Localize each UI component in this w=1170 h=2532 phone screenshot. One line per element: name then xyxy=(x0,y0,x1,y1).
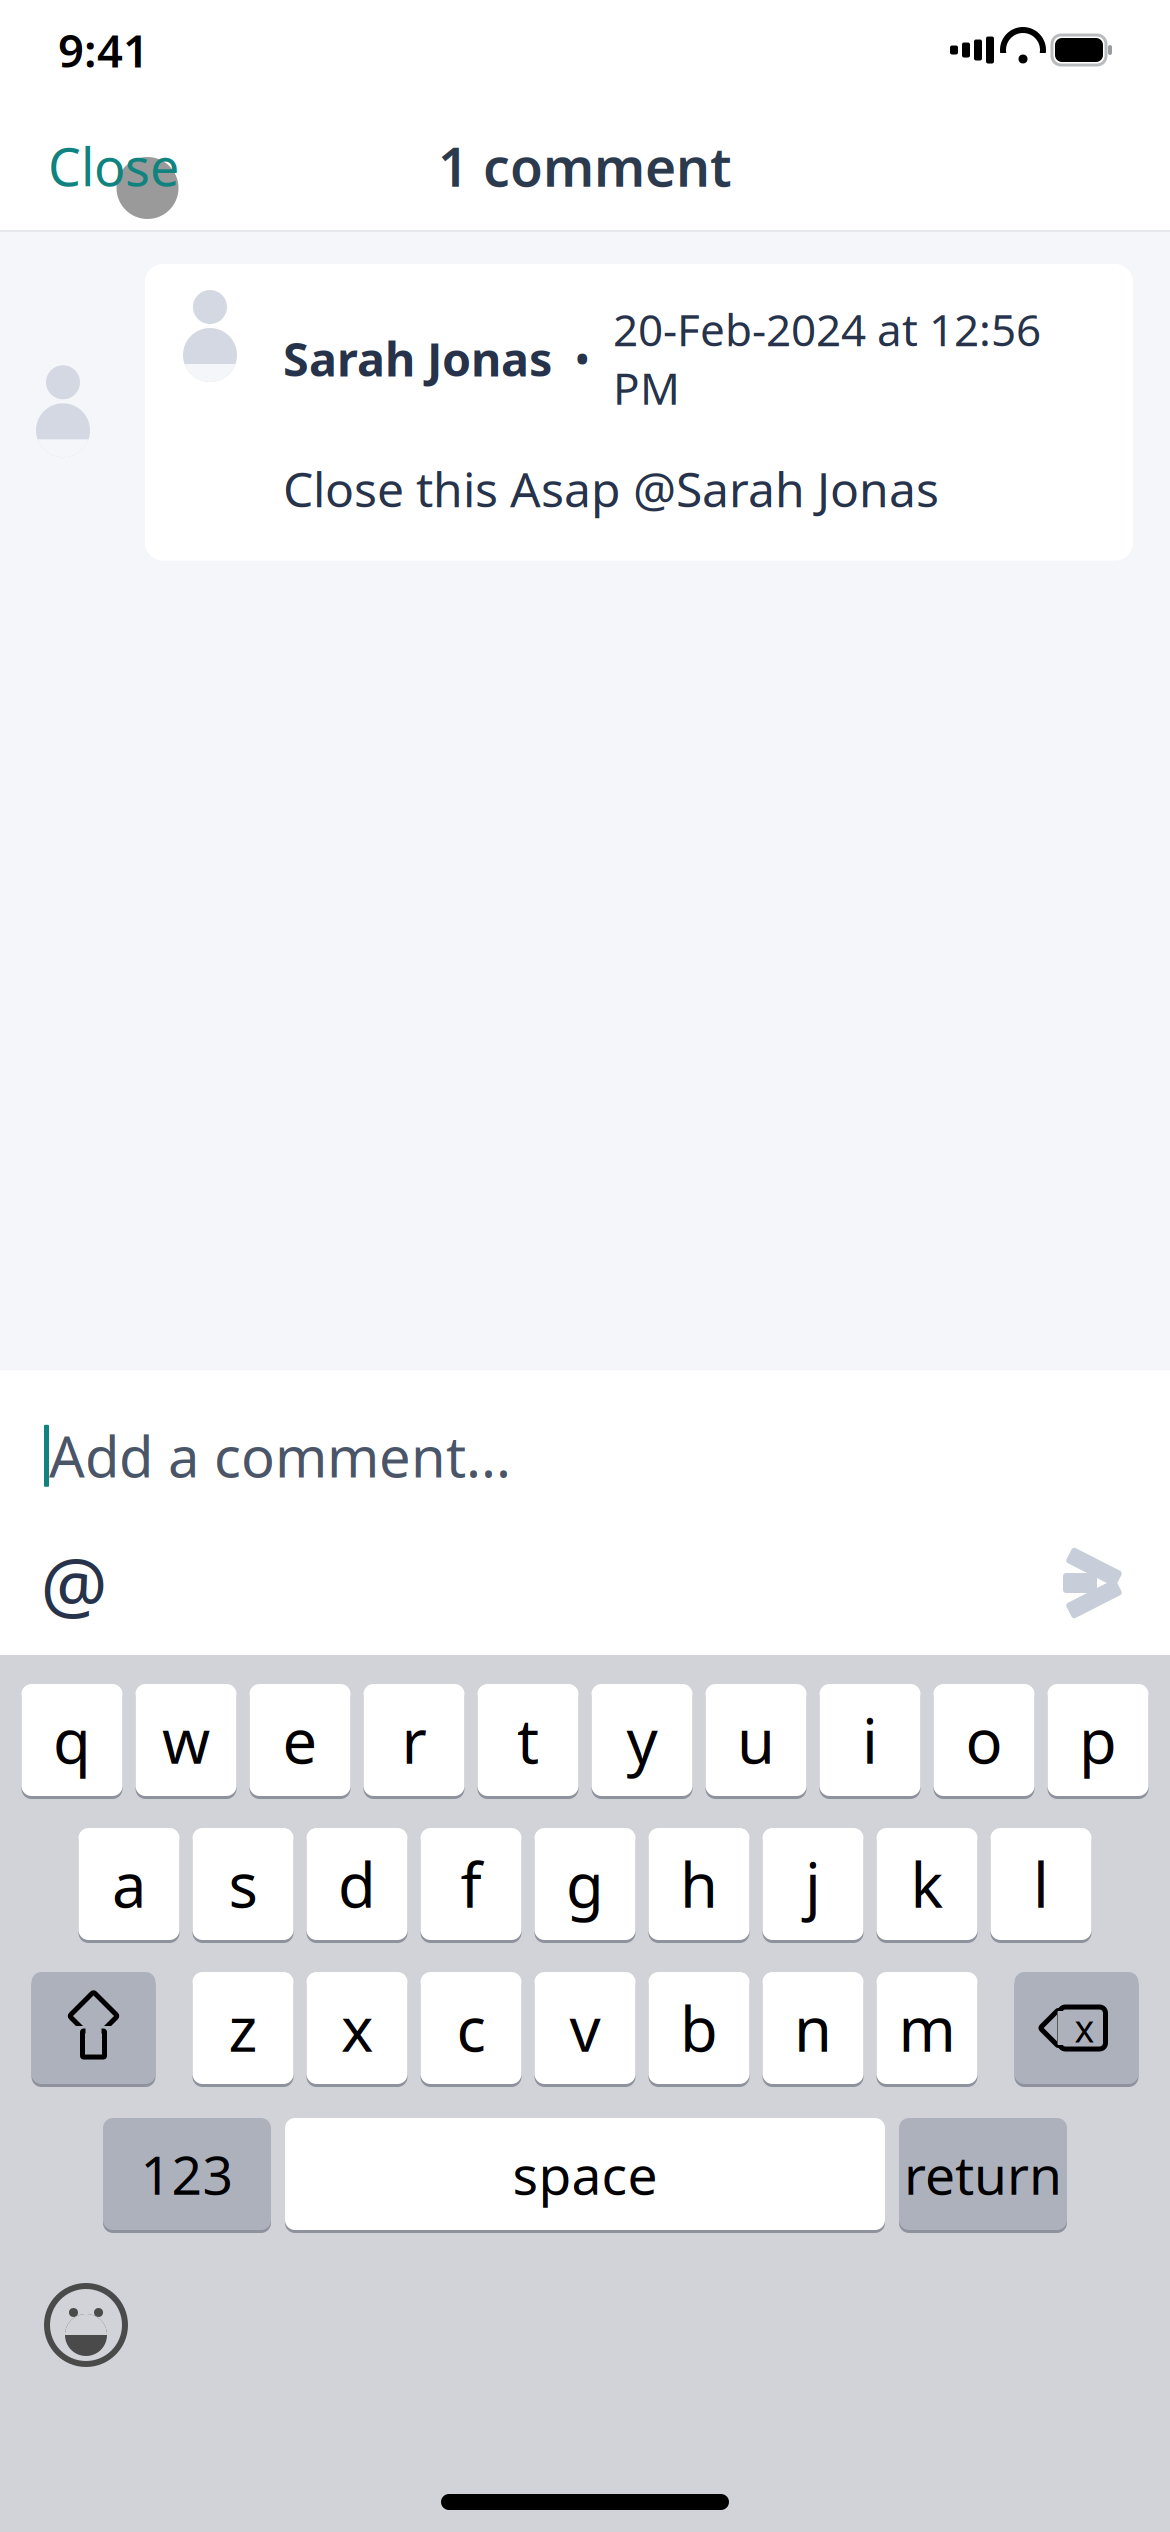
staticText: h xyxy=(680,1843,718,1925)
button[interactable]: return xyxy=(899,2115,1067,2233)
staticText: return xyxy=(904,2139,1062,2209)
button[interactable]: m xyxy=(876,1969,977,2087)
button[interactable]: n xyxy=(762,1969,863,2087)
button[interactable]: x xyxy=(306,1969,407,2087)
staticText: o xyxy=(965,1699,1002,1781)
staticText: f xyxy=(460,1843,481,1925)
button[interactable]: q xyxy=(21,1681,122,1799)
staticText: x xyxy=(341,1987,373,2069)
button[interactable]: k xyxy=(876,1825,977,1943)
staticText: y xyxy=(626,1699,657,1781)
button[interactable]: h xyxy=(648,1825,749,1943)
button[interactable]: v xyxy=(534,1969,635,2087)
button[interactable]: i xyxy=(819,1681,920,1799)
button[interactable]: u xyxy=(705,1681,806,1799)
button[interactable]: b xyxy=(648,1969,749,2087)
button[interactable]: Close xyxy=(0,111,238,221)
staticText: 9:41 xyxy=(58,20,149,80)
button[interactable]: l xyxy=(990,1825,1091,1943)
staticText: q xyxy=(53,1699,91,1781)
staticText: x xyxy=(1074,2003,1094,2053)
button[interactable]: s xyxy=(192,1825,293,1943)
button[interactable]: t xyxy=(477,1681,578,1799)
staticText: s xyxy=(228,1843,257,1925)
staticText: v xyxy=(569,1987,600,2069)
staticText: u xyxy=(737,1699,775,1781)
staticText: a xyxy=(112,1843,146,1925)
button[interactable]: Mention someone xyxy=(28,1537,120,1629)
staticText: r xyxy=(401,1699,426,1781)
staticText: c xyxy=(456,1987,485,2069)
staticText: 20-Feb-2024 at 12:56 PM xyxy=(613,300,1041,417)
button[interactable]: space xyxy=(285,2115,885,2233)
button[interactable]: o xyxy=(933,1681,1034,1799)
staticText: i xyxy=(862,1699,878,1781)
button[interactable]: w xyxy=(135,1681,236,1799)
button[interactable]: d xyxy=(306,1825,407,1943)
button[interactable]: 123 xyxy=(103,2115,271,2233)
button[interactable]: Send comment xyxy=(1044,1537,1140,1629)
staticText: 123 xyxy=(140,2139,233,2209)
staticText: Close xyxy=(48,131,179,201)
button[interactable]: e xyxy=(249,1681,350,1799)
staticText: k xyxy=(910,1843,943,1925)
staticText: j xyxy=(805,1843,821,1925)
staticText: 1 comment xyxy=(438,131,732,201)
staticText: l xyxy=(1033,1843,1049,1925)
button[interactable]: r xyxy=(363,1681,464,1799)
staticText: w xyxy=(162,1699,210,1781)
staticText: n xyxy=(794,1987,832,2069)
button[interactable]: j xyxy=(762,1825,863,1943)
staticText: @ xyxy=(40,1533,107,1633)
staticText: m xyxy=(898,1987,955,2069)
staticText: Close this Asap @Sarah Jonas xyxy=(283,457,939,521)
staticText: p xyxy=(1079,1699,1117,1781)
staticText: Add a comment... xyxy=(49,1419,511,1493)
button[interactable]: a xyxy=(78,1825,179,1943)
button[interactable]: y xyxy=(591,1681,692,1799)
button[interactable]: Emoji keyboard xyxy=(34,2273,138,2377)
staticText: b xyxy=(680,1987,718,2069)
staticText: g xyxy=(566,1843,604,1925)
staticText: z xyxy=(228,1987,257,2069)
button[interactable]: f xyxy=(420,1825,521,1943)
staticText: d xyxy=(338,1843,376,1925)
staticText: space xyxy=(512,2139,657,2209)
button[interactable]: Delete xyxy=(1014,1969,1138,2087)
staticText: e xyxy=(282,1699,317,1781)
staticText: • xyxy=(552,329,613,388)
button[interactable]: g xyxy=(534,1825,635,1943)
staticText: t xyxy=(517,1699,539,1781)
button[interactable]: z xyxy=(192,1969,293,2087)
button[interactable]: p xyxy=(1047,1681,1148,1799)
button[interactable]: Shift xyxy=(31,1969,155,2087)
button[interactable]: c xyxy=(420,1969,521,2087)
staticText: Sarah Jonas xyxy=(283,327,552,389)
